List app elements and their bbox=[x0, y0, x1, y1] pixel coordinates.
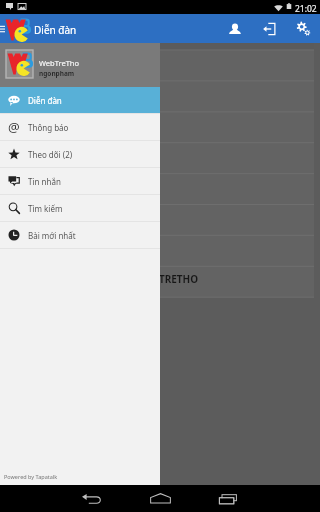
button[interactable]: Tìm kiếm bbox=[0, 195, 160, 221]
staticText: @ bbox=[8, 118, 20, 136]
button[interactable]: Bài mới nhất bbox=[0, 222, 160, 248]
staticText: WebTreTho bbox=[39, 58, 79, 68]
button[interactable]: Home bbox=[130, 485, 190, 512]
button[interactable]: Theo dõi (2) bbox=[0, 141, 160, 167]
staticText: Thông báo bbox=[28, 122, 69, 133]
staticText: Tìm kiếm bbox=[28, 203, 63, 214]
button[interactable]: Open navigation drawer bbox=[0, 14, 6, 43]
button[interactable]: Recent apps bbox=[199, 485, 259, 512]
staticText: Diễn đàn bbox=[28, 95, 62, 106]
button[interactable]: Profile bbox=[226, 14, 244, 43]
staticText: Diễn đàn bbox=[34, 23, 77, 37]
button[interactable]: @ bbox=[0, 114, 160, 140]
button[interactable]: Settings bbox=[293, 14, 313, 43]
button[interactable]: WebTreTho bbox=[0, 43, 160, 87]
button[interactable]: Log out bbox=[260, 14, 278, 43]
staticText: Powered by Tapatalk bbox=[4, 473, 58, 480]
button[interactable]: Back bbox=[62, 485, 122, 512]
staticText: 21:02 bbox=[295, 3, 317, 15]
button[interactable]: Diễn đàn bbox=[0, 87, 160, 113]
staticText: Bài mới nhất bbox=[28, 230, 76, 241]
button[interactable]: Tin nhắn bbox=[0, 168, 160, 194]
staticText: Tin nhắn bbox=[28, 176, 61, 187]
staticText: WEBTRETHO bbox=[137, 272, 199, 286]
staticText: ngonpham bbox=[39, 69, 75, 78]
staticText: Theo dõi (2) bbox=[28, 149, 73, 160]
